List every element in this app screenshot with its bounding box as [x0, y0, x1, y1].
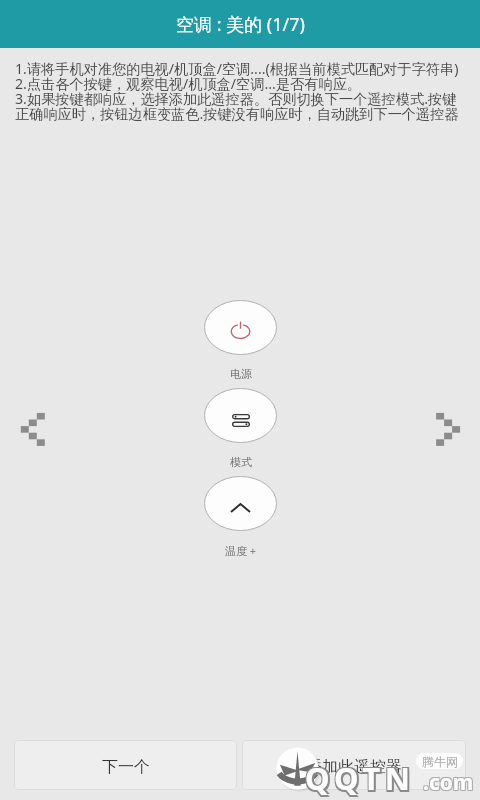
button[interactable]: Previous remote: [8, 403, 57, 455]
button[interactable]: 添加此遥控器: [242, 740, 466, 790]
staticText: QQTN: [307, 759, 417, 800]
staticText: 温度 +: [225, 543, 257, 558]
staticText: .com: [423, 768, 474, 797]
staticText: .com: [422, 769, 473, 798]
button[interactable]: 下一个: [14, 740, 237, 790]
staticText: QQTN: [304, 759, 414, 800]
staticText: 空调 : 美的 (1/7): [176, 12, 305, 37]
button[interactable]: [204, 300, 277, 355]
staticText: 下一个: [102, 757, 150, 777]
staticText: 模式: [230, 455, 252, 469]
staticText: QQTN: [304, 756, 414, 798]
staticText: .com: [424, 769, 475, 798]
staticText: .com: [424, 767, 475, 796]
staticText: QQTN: [305, 757, 415, 799]
staticText: .com: [422, 767, 473, 796]
button[interactable]: [204, 476, 277, 531]
staticText: QQTN: [307, 756, 417, 798]
button[interactable]: Next remote: [424, 403, 473, 455]
staticText: 1.请将手机对准您的电视/机顶盒/空调....(根据当前模式匹配对于字符串) 2…: [15, 59, 459, 123]
staticText: 腾牛网: [422, 754, 458, 769]
button[interactable]: [204, 388, 277, 443]
staticText: 添加此遥控器: [306, 757, 402, 777]
staticText: 电源: [230, 367, 252, 381]
